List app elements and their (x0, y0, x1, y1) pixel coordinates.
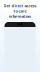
staticText: Get direct access (3, 3, 36, 8)
staticText: information (8, 14, 31, 19)
staticText: to care (13, 8, 26, 14)
